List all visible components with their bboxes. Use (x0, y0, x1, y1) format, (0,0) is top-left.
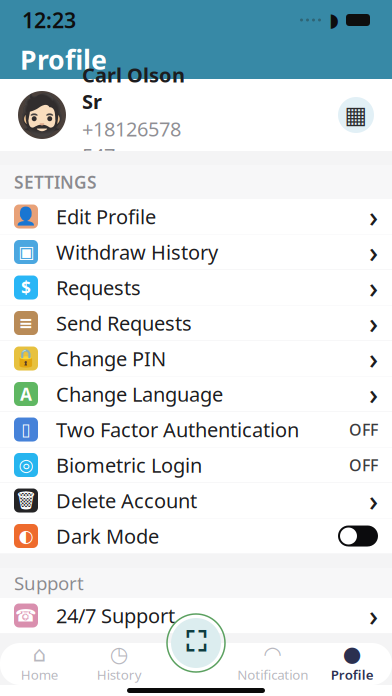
staticText: Profile (331, 666, 374, 683)
staticText: Edit Profile (56, 203, 156, 230)
button[interactable]: 🗑 (0, 483, 392, 518)
staticText: OFF (349, 419, 378, 440)
staticText: 👤 (15, 207, 37, 226)
staticText: Requests (56, 274, 141, 301)
staticText: ◷ (110, 642, 129, 666)
staticText: Profile (20, 42, 107, 77)
button[interactable]: ● (312, 643, 392, 685)
staticText: +18126578547 (82, 115, 181, 169)
button[interactable]: 👤 (0, 199, 392, 234)
staticText: Withdraw History (56, 239, 218, 265)
button[interactable]: 🔒 (0, 341, 392, 376)
staticText: ⌂ (33, 642, 47, 666)
button[interactable]: Scan QR code (166, 613, 226, 673)
staticText: Change PIN (56, 345, 166, 372)
staticText: OFF (349, 454, 378, 476)
button[interactable]: $ (0, 270, 392, 305)
staticText: › (369, 198, 378, 235)
staticText: › (369, 269, 378, 306)
staticText: Send Requests (56, 310, 192, 336)
staticText: 12:23 (22, 6, 76, 34)
staticText: ≡ (18, 313, 33, 333)
button[interactable]: ◐ (0, 518, 392, 554)
staticText: 🧔🏻 (17, 92, 67, 138)
staticText: 24/7 Support (56, 602, 175, 629)
staticText: Notification (237, 666, 308, 683)
staticText: SETTINGS (14, 170, 97, 193)
button[interactable]: ▣ (0, 234, 392, 270)
staticText: ▦ (344, 101, 367, 129)
staticText: Dark Mode (56, 523, 159, 549)
staticText: › (369, 233, 378, 271)
staticText: Carl Olson Sr (82, 61, 185, 114)
staticText: Change Language (56, 381, 223, 407)
staticText: 🔒 (15, 349, 37, 368)
button[interactable]: 🧔🏻 (0, 79, 392, 151)
button[interactable]: ☎ (0, 598, 392, 633)
staticText: Home (21, 666, 59, 683)
staticText: ◠ (263, 642, 282, 666)
staticText: $ (21, 276, 31, 299)
button[interactable]: ◷ (79, 643, 159, 685)
staticText: ▯ (21, 420, 31, 439)
staticText: Biometric Login (56, 452, 202, 478)
staticText: ◗ (329, 9, 339, 31)
staticText: Delete Account (56, 487, 197, 514)
staticText: › (369, 340, 378, 377)
staticText: ◎ (18, 455, 33, 475)
button[interactable]: ◎ (0, 447, 392, 483)
button[interactable]: ≡ (0, 305, 392, 341)
button[interactable]: ◠ (233, 643, 312, 685)
staticText: ▣ (18, 242, 34, 262)
staticText: › (369, 482, 378, 519)
staticText: ⛶ (186, 629, 206, 657)
staticText: › (369, 375, 378, 413)
button[interactable]: ⌂ (0, 643, 79, 685)
staticText: › (369, 597, 378, 634)
staticText: ● (343, 642, 362, 666)
staticText: Support (14, 571, 84, 595)
button[interactable]: A (0, 376, 392, 412)
staticText: A (20, 382, 32, 405)
staticText: ☎ (15, 606, 37, 625)
button[interactable]: ▯ (0, 412, 392, 447)
staticText: History (97, 666, 142, 683)
staticText: Two Factor Authentication (56, 416, 299, 443)
staticText: ◐ (18, 526, 33, 546)
staticText: 🗑 (15, 491, 37, 510)
staticText: › (369, 304, 378, 342)
